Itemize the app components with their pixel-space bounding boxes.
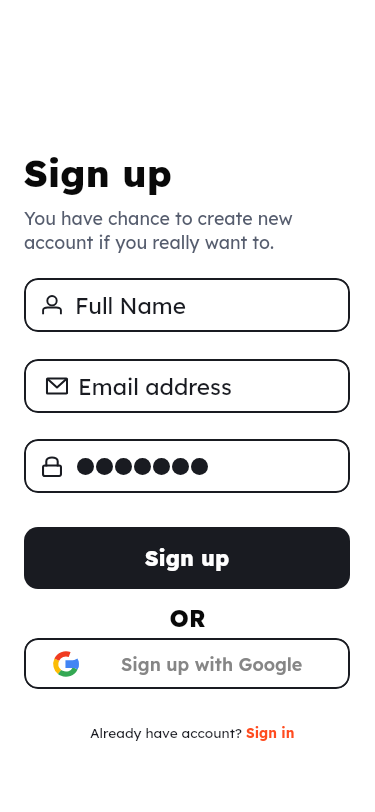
button[interactable]: Name — [24, 278, 350, 332]
staticText: Sign up with Google — [121, 653, 303, 675]
button[interactable]: Sign in — [246, 724, 295, 741]
button[interactable]: Password — [24, 439, 350, 493]
staticText: OR — [0, 604, 375, 633]
staticText: Sign up — [145, 545, 230, 572]
other: Password — [42, 456, 62, 477]
staticText: Full Name — [75, 291, 186, 319]
staticText: Already have account? — [90, 724, 246, 741]
staticText: Sign in — [246, 724, 295, 741]
staticText: You have chance to create new account if… — [24, 207, 293, 254]
other: Google — [53, 651, 79, 677]
button[interactable]: Sign up — [24, 527, 350, 589]
other: Name — [42, 295, 62, 315]
other: Email — [46, 375, 68, 397]
button[interactable]: Email — [24, 359, 350, 413]
staticText: Sign up — [24, 150, 172, 197]
staticText: Email address — [78, 372, 232, 400]
button[interactable]: Google — [24, 638, 350, 689]
